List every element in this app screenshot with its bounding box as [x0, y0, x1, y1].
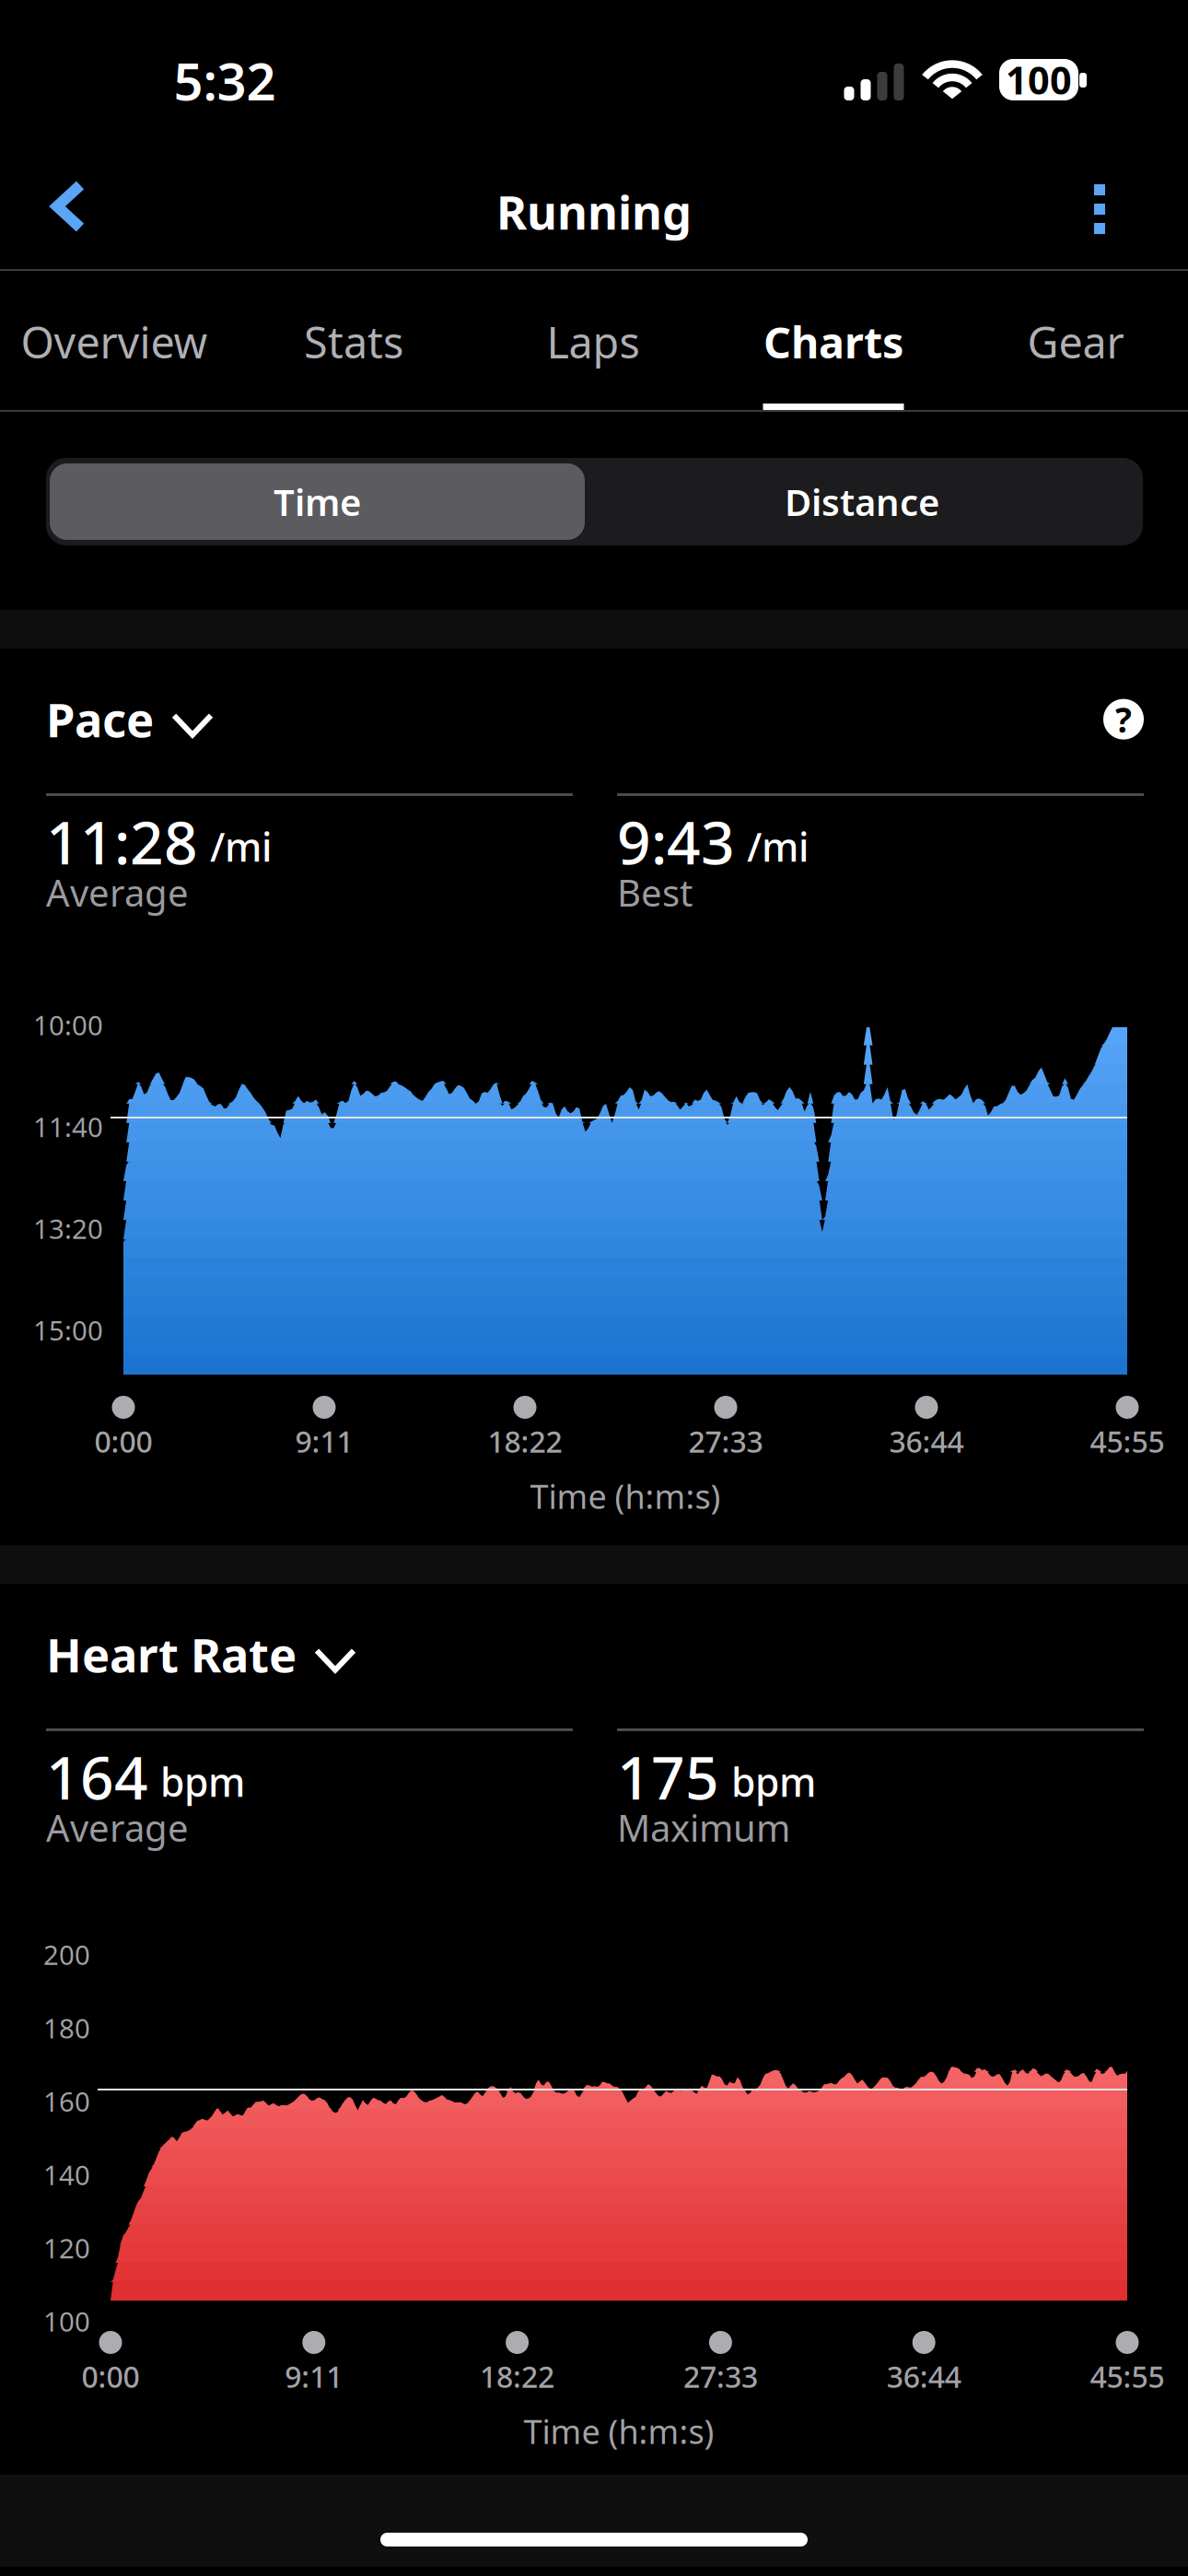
staticText: 120 [43, 2230, 90, 2266]
staticText: Time (h:m:s) [524, 2409, 714, 2453]
button[interactable]: Charts [713, 271, 950, 410]
staticText: Pace [46, 688, 154, 750]
staticText: Laps [547, 313, 640, 370]
staticText: Gear [1027, 313, 1124, 370]
button[interactable]: Pace [46, 684, 211, 755]
staticText: Charts [763, 313, 903, 370]
staticText: bpm [731, 1755, 816, 1808]
staticText: 11:28 [46, 802, 198, 881]
staticText: 10:00 [33, 1007, 103, 1043]
staticText: 36:44 [889, 1422, 964, 1461]
staticText: Heart Rate [46, 1623, 297, 1685]
staticText: 160 [43, 2083, 90, 2119]
button[interactable]: Overview [0, 271, 238, 410]
staticText: Stats [304, 313, 403, 370]
staticText: 175 [617, 1738, 719, 1816]
staticText: 180 [43, 2010, 90, 2046]
staticText: 5:32 [174, 46, 276, 115]
staticText: 0:00 [82, 2357, 140, 2396]
staticText: 140 [43, 2157, 90, 2193]
staticText: 45:55 [1090, 1422, 1165, 1461]
staticText: 9:11 [285, 2357, 343, 2396]
staticText: bpm [160, 1755, 245, 1808]
staticText: /mi [747, 820, 809, 872]
staticText: 0:00 [94, 1422, 152, 1461]
staticText: Overview [21, 313, 208, 370]
staticText: 164 [46, 1738, 148, 1816]
staticText: 9:43 [617, 802, 735, 881]
staticText: 18:22 [488, 1422, 562, 1461]
staticText: Time [274, 477, 361, 526]
staticText: 36:44 [887, 2357, 961, 2396]
staticText: 18:22 [480, 2357, 554, 2396]
staticText: Average [46, 1803, 189, 1852]
button[interactable]: Distance [585, 463, 1139, 540]
button[interactable]: More options [1053, 152, 1147, 266]
staticText: Maximum [617, 1803, 790, 1852]
button[interactable]: Heart Rate [46, 1619, 354, 1690]
staticText: 9:11 [295, 1422, 353, 1461]
button[interactable]: Back [26, 155, 111, 258]
staticText: Best [617, 868, 693, 917]
staticText: 11:40 [33, 1109, 103, 1145]
button[interactable]: Stats [238, 271, 475, 410]
staticText: Running [496, 181, 692, 243]
staticText: Distance [785, 477, 939, 526]
button[interactable]: Laps [475, 271, 713, 410]
staticText: ? [1115, 696, 1132, 742]
staticText: Time (h:m:s) [530, 1474, 721, 1518]
staticText: 27:33 [688, 1422, 763, 1461]
staticText: 13:20 [33, 1210, 103, 1246]
button[interactable]: Gear [950, 271, 1188, 410]
staticText: 200 [43, 1937, 90, 1973]
button[interactable]: Time [50, 463, 585, 540]
staticText: 27:33 [683, 2357, 758, 2396]
staticText: 15:00 [33, 1312, 103, 1348]
staticText: 100 [1006, 54, 1072, 105]
staticText: 45:55 [1090, 2357, 1165, 2396]
button[interactable]: Help [1103, 692, 1144, 747]
staticText: 100 [43, 2303, 90, 2339]
staticText: /mi [210, 820, 273, 872]
staticText: Average [46, 868, 189, 917]
